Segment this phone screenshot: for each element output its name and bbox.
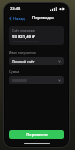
staticText: Личный счёт ****1234 (12, 59, 35, 64)
other: Открыть список (58, 60, 61, 63)
other: Открыть список (58, 79, 61, 82)
staticText: Назад (13, 16, 25, 21)
staticText: 23:48 (10, 6, 21, 11)
button[interactable]: Личный счёт ****1234 (9, 57, 64, 65)
staticText: Иван получателя (9, 51, 36, 55)
button[interactable]: Открыть список (9, 76, 64, 84)
staticText: Счёт списания (12, 29, 35, 33)
staticText: 93 821,40 ₽ (12, 34, 35, 40)
button[interactable]: Переводы (30, 14, 56, 22)
button[interactable]: Перевести (9, 130, 64, 139)
staticText: Перевести (26, 132, 48, 137)
button[interactable]: Назад (8, 15, 26, 22)
button[interactable]: Счёт списания (9, 26, 64, 45)
staticText: Сумма (9, 70, 20, 74)
